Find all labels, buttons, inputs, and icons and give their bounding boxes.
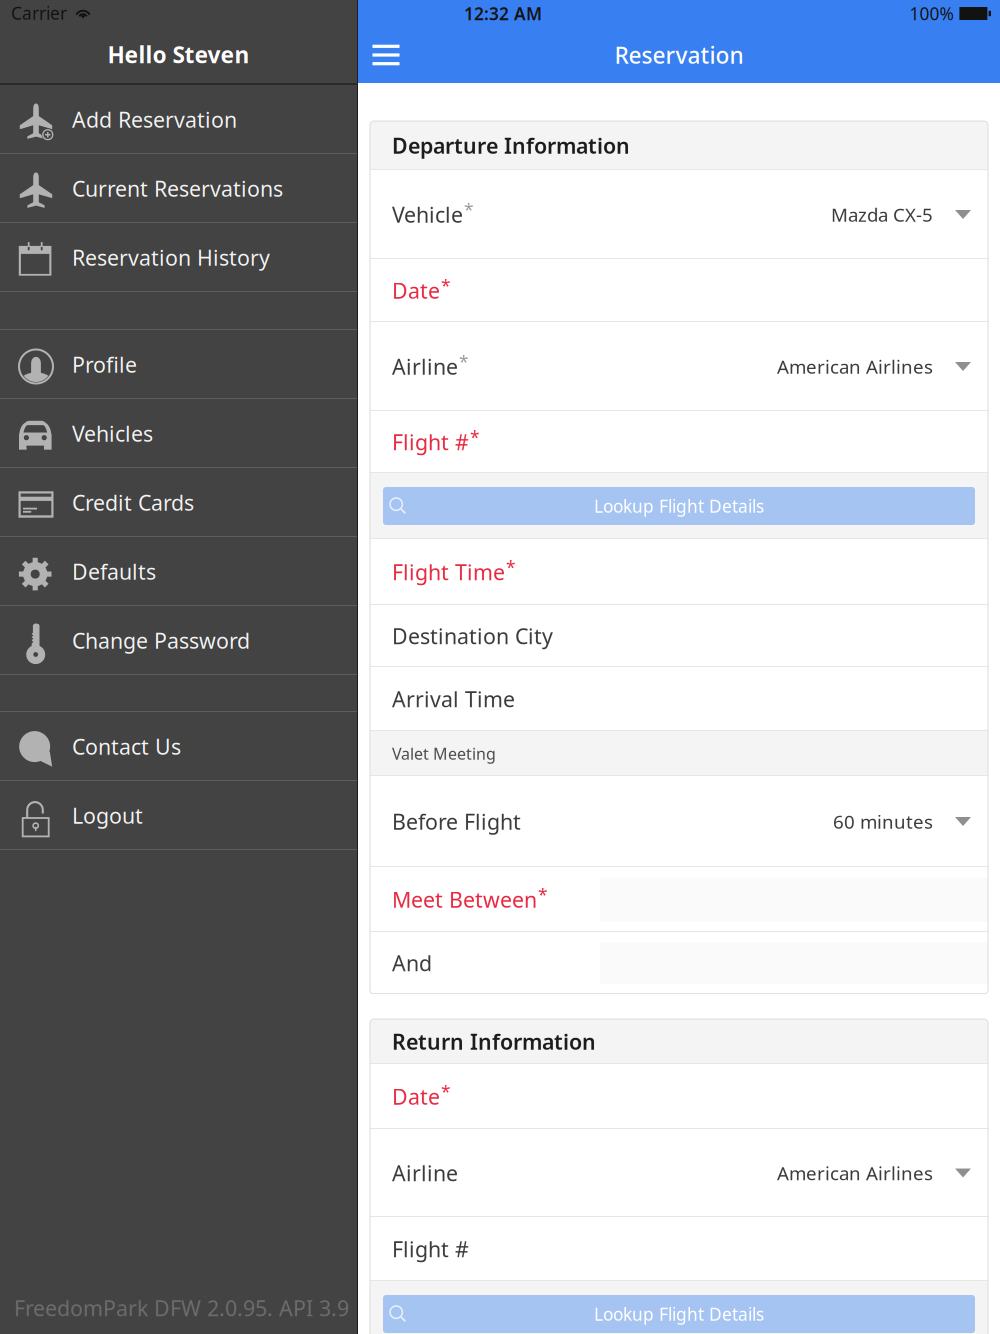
staticText: Contact Us [72, 732, 181, 761]
staticText: * [470, 426, 480, 449]
staticText: American Airlines [777, 354, 933, 379]
button[interactable]: And [370, 932, 988, 994]
staticText: Add Reservation [72, 105, 237, 134]
staticText: Flight Time [392, 558, 505, 586]
staticText: * [538, 883, 548, 906]
staticText: * [459, 350, 469, 373]
staticText: Before Flight [392, 807, 521, 836]
staticText: * [441, 1080, 451, 1103]
staticText: Departure Information [392, 131, 630, 160]
staticText: Carrier [11, 1, 67, 24]
staticText: Airline [392, 1159, 458, 1187]
staticText: Defaults [72, 557, 156, 586]
staticText: Reservation History [72, 243, 270, 272]
staticText: Vehicle [392, 200, 463, 229]
button[interactable]: Date [370, 259, 988, 322]
staticText: Mazda CX-5 [831, 202, 933, 227]
staticText: 100% [909, 2, 953, 25]
button[interactable]: Current Reservations [0, 154, 357, 223]
staticText: Airline [392, 352, 458, 381]
staticText: Logout [72, 801, 143, 830]
button[interactable]: Add Reservation [0, 85, 357, 154]
staticText: Return Information [392, 1027, 596, 1056]
staticText: Arrival Time [392, 685, 515, 713]
staticText: Current Reservations [72, 174, 283, 203]
button[interactable]: Credit Cards [0, 468, 357, 537]
button[interactable]: Date [370, 1064, 988, 1129]
button[interactable]: Defaults [0, 537, 357, 606]
staticText: Profile [72, 350, 137, 379]
button[interactable]: Flight # [370, 411, 988, 473]
staticText: 12:32 AM [464, 2, 542, 25]
button[interactable]: Meet Between [370, 867, 988, 932]
button[interactable]: Airline [370, 322, 988, 411]
staticText: Valet Meeting [392, 743, 496, 764]
staticText: Meet Between [392, 885, 537, 914]
staticText: Flight # [392, 1235, 469, 1263]
staticText: Vehicles [72, 419, 153, 448]
staticText: * [506, 556, 516, 579]
button[interactable]: Menu [364, 33, 408, 77]
button[interactable]: Destination City [370, 605, 988, 667]
button[interactable]: Logout [0, 781, 357, 850]
button[interactable]: Flight Time [370, 539, 988, 605]
staticText: Hello Steven [107, 39, 249, 69]
button[interactable]: Vehicles [0, 399, 357, 468]
button[interactable]: Contact Us [0, 712, 357, 781]
button[interactable]: Reservation History [0, 223, 357, 292]
staticText: Change Password [72, 626, 250, 655]
button[interactable]: Lookup Flight Details [370, 473, 988, 539]
button[interactable]: Change Password [0, 606, 357, 675]
button[interactable]: Arrival Time [370, 667, 988, 731]
staticText: Credit Cards [72, 488, 194, 517]
staticText: * [441, 274, 451, 297]
button[interactable]: Airline [370, 1129, 988, 1217]
button[interactable]: Before Flight [370, 776, 988, 867]
staticText: Date [392, 1082, 440, 1111]
staticText: American Airlines [777, 1161, 933, 1185]
staticText: Lookup Flight Details [594, 494, 764, 517]
button[interactable]: Profile [0, 330, 357, 399]
staticText: And [392, 949, 432, 977]
staticText: Date [392, 276, 440, 305]
button[interactable]: Lookup Flight Details [370, 1281, 988, 1334]
staticText: 60 minutes [833, 809, 933, 834]
staticText: Lookup Flight Details [594, 1302, 764, 1325]
button[interactable]: Flight # [370, 1217, 988, 1281]
staticText: * [464, 198, 474, 221]
staticText: Destination City [392, 622, 553, 650]
button[interactable]: Vehicle [370, 170, 988, 259]
staticText: Flight # [392, 428, 469, 456]
staticText: Reservation [614, 40, 743, 70]
staticText: FreedomPark DFW 2.0.95. API 3.9 [14, 1294, 349, 1322]
